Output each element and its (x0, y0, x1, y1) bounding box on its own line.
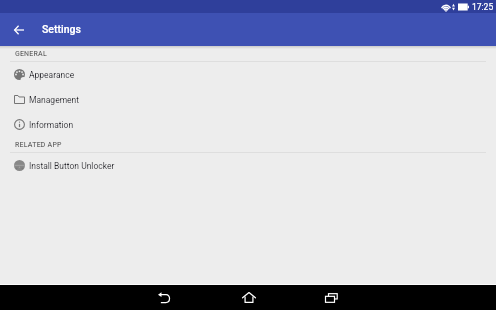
button[interactable]: Management (0, 87, 496, 112)
button[interactable]: Information (0, 112, 496, 137)
button[interactable]: Install Button Unlocker (0, 153, 496, 178)
button[interactable]: Home (236, 285, 261, 310)
staticText: Appearance (29, 70, 75, 80)
button[interactable]: Back (152, 285, 177, 310)
button[interactable]: Appearance (0, 62, 496, 87)
staticText: GENERAL (15, 50, 47, 58)
button[interactable]: Navigate up (0, 13, 38, 46)
staticText: Information (29, 120, 74, 130)
staticText: Management (29, 95, 80, 105)
staticText: Settings (42, 23, 81, 35)
staticText: Install Button Unlocker (29, 161, 115, 171)
button[interactable]: Recent apps (319, 285, 344, 310)
staticText: RELATED APP (15, 141, 62, 149)
staticText: 17:25 (472, 2, 494, 12)
